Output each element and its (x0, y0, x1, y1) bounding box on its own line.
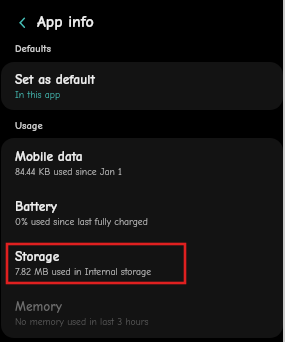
staticText: 0% used since last fully charged (15, 216, 148, 227)
button[interactable]: Navigate up (11, 12, 31, 32)
button[interactable]: Battery (1, 188, 283, 238)
staticText: Battery (15, 199, 57, 215)
staticText: Storage (15, 249, 60, 265)
staticText: App info (37, 13, 94, 31)
staticText: 84.44 KB used since Jan 1 (15, 166, 122, 177)
button[interactable]: Set as default (1, 62, 283, 110)
staticText: In this app (15, 89, 61, 100)
staticText: Set as default (15, 72, 95, 88)
staticText: 7.82 MB used in Internal storage (15, 266, 152, 277)
staticText: Memory (15, 299, 62, 315)
staticText: No memory used in last 3 hours (15, 316, 149, 327)
staticText: Mobile data (15, 149, 83, 165)
button[interactable]: Memory (1, 288, 283, 338)
button[interactable]: Mobile data (1, 138, 283, 188)
staticText: Defaults (15, 43, 52, 55)
staticText: Usage (15, 120, 43, 132)
button[interactable]: Storage (1, 238, 283, 288)
